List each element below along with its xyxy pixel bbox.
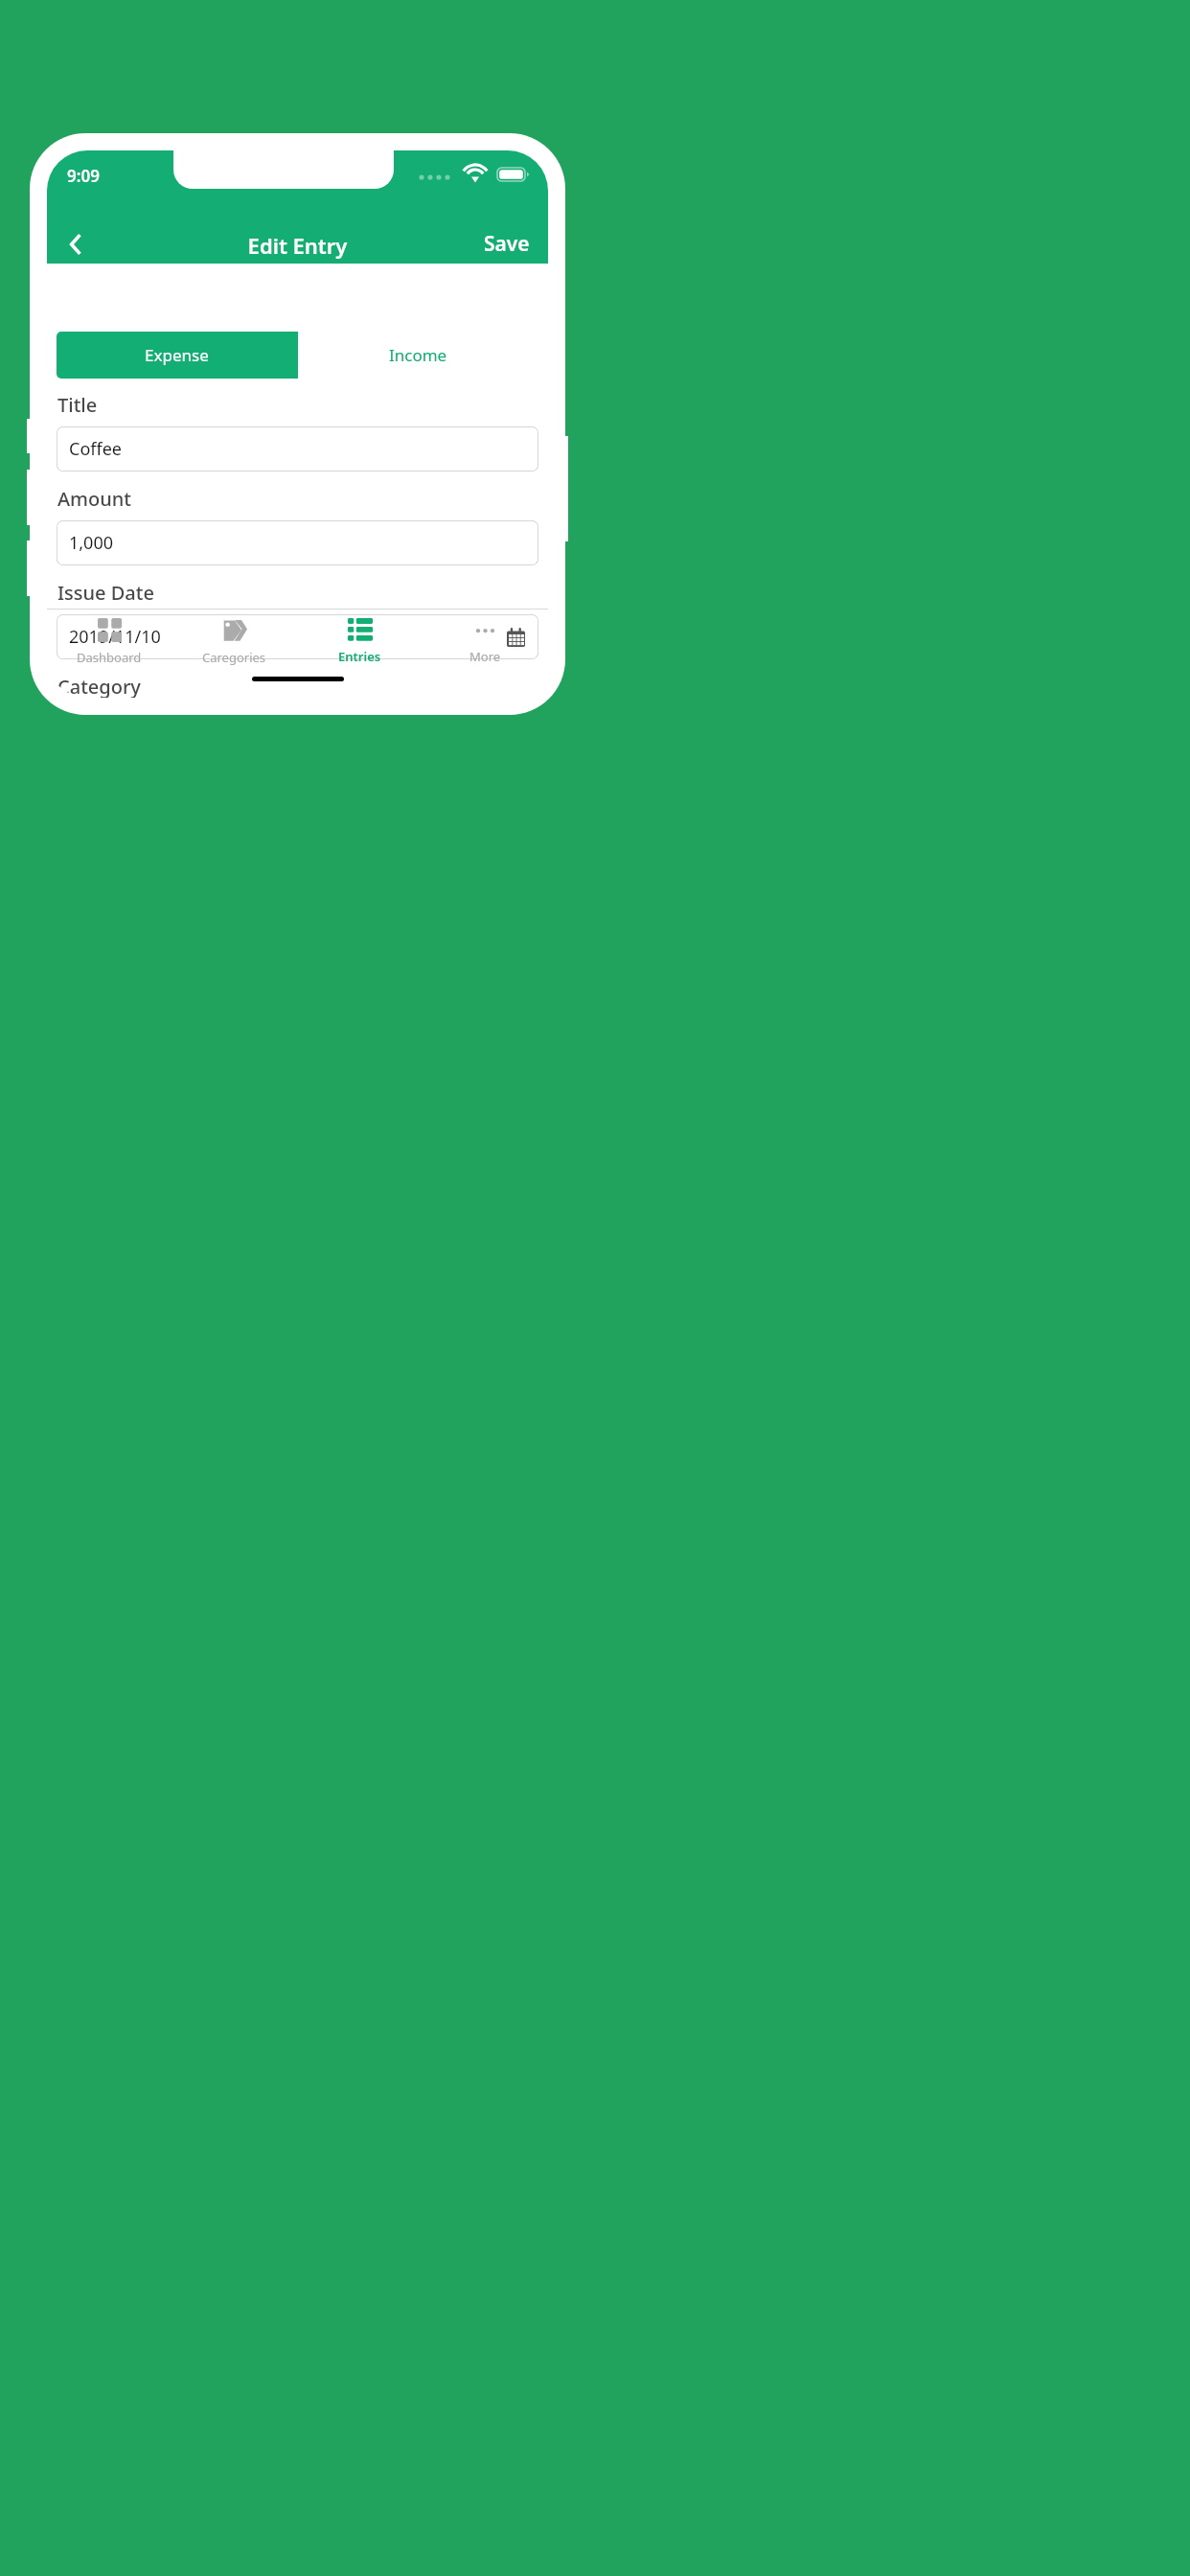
staticText: Entries (338, 648, 381, 665)
staticText: Title (57, 392, 98, 418)
button[interactable]: Save (472, 223, 541, 264)
staticText: Expense (145, 344, 209, 366)
staticText: Coffee (69, 437, 122, 461)
staticText: Save (484, 230, 530, 258)
button[interactable]: Caregories (172, 609, 297, 670)
button[interactable]: More (423, 609, 548, 670)
staticText: Issue Date (57, 580, 154, 606)
button[interactable]: Coffee (57, 426, 538, 471)
button[interactable]: 1,000 (57, 520, 538, 565)
staticText: Edit Entry (47, 231, 548, 260)
button[interactable]: Expense (57, 332, 297, 379)
staticText: Caregories (202, 649, 266, 666)
staticText: Dashboard (77, 649, 142, 666)
staticText: Amount (57, 486, 131, 512)
button[interactable]: Dashboard (47, 609, 172, 670)
staticText: 9:09 (67, 165, 100, 187)
button[interactable]: Entries (297, 609, 423, 670)
staticText: 2019/11/10 (69, 625, 161, 649)
staticText: More (469, 648, 501, 665)
button[interactable]: Back (51, 223, 101, 265)
button[interactable]: 2019/11/10 (57, 614, 538, 659)
staticText: Income (389, 344, 447, 366)
other: Pick date (507, 628, 525, 647)
button[interactable]: Income (298, 332, 538, 379)
staticText: 1,000 (69, 531, 114, 555)
staticText: Category (57, 674, 141, 698)
